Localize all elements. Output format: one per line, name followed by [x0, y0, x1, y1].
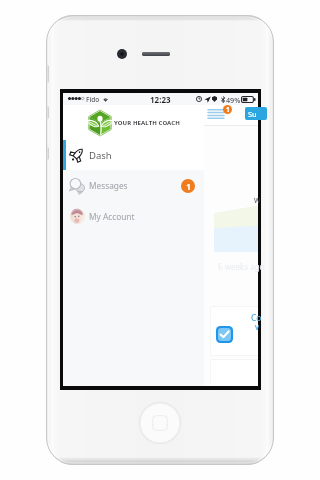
- staticText: Su: [248, 109, 257, 119]
- staticText: Co: [251, 312, 262, 324]
- staticText: YOUR HEALTH COACH: [114, 119, 180, 127]
- staticText: Dash: [89, 149, 112, 162]
- button[interactable]: Co: [210, 306, 258, 356]
- staticText: 12:23: [150, 94, 171, 105]
- button[interactable]: My Account: [63, 201, 204, 231]
- button[interactable]: Su: [245, 107, 267, 120]
- staticText: Messages: [89, 180, 128, 191]
- staticText: 49%: [226, 95, 241, 105]
- button[interactable]: Dash: [63, 140, 204, 170]
- staticText: 6 weeks ago: [218, 261, 265, 272]
- staticText: 1: [186, 181, 191, 192]
- staticText: 1: [226, 105, 230, 114]
- button[interactable]: Open navigation menu: [205, 107, 226, 120]
- button[interactable]: Messages: [63, 170, 204, 201]
- staticText: Fido: [86, 95, 100, 104]
- staticText: w: [254, 194, 261, 205]
- staticText: My Account: [89, 211, 135, 222]
- staticText: v: [255, 321, 260, 332]
